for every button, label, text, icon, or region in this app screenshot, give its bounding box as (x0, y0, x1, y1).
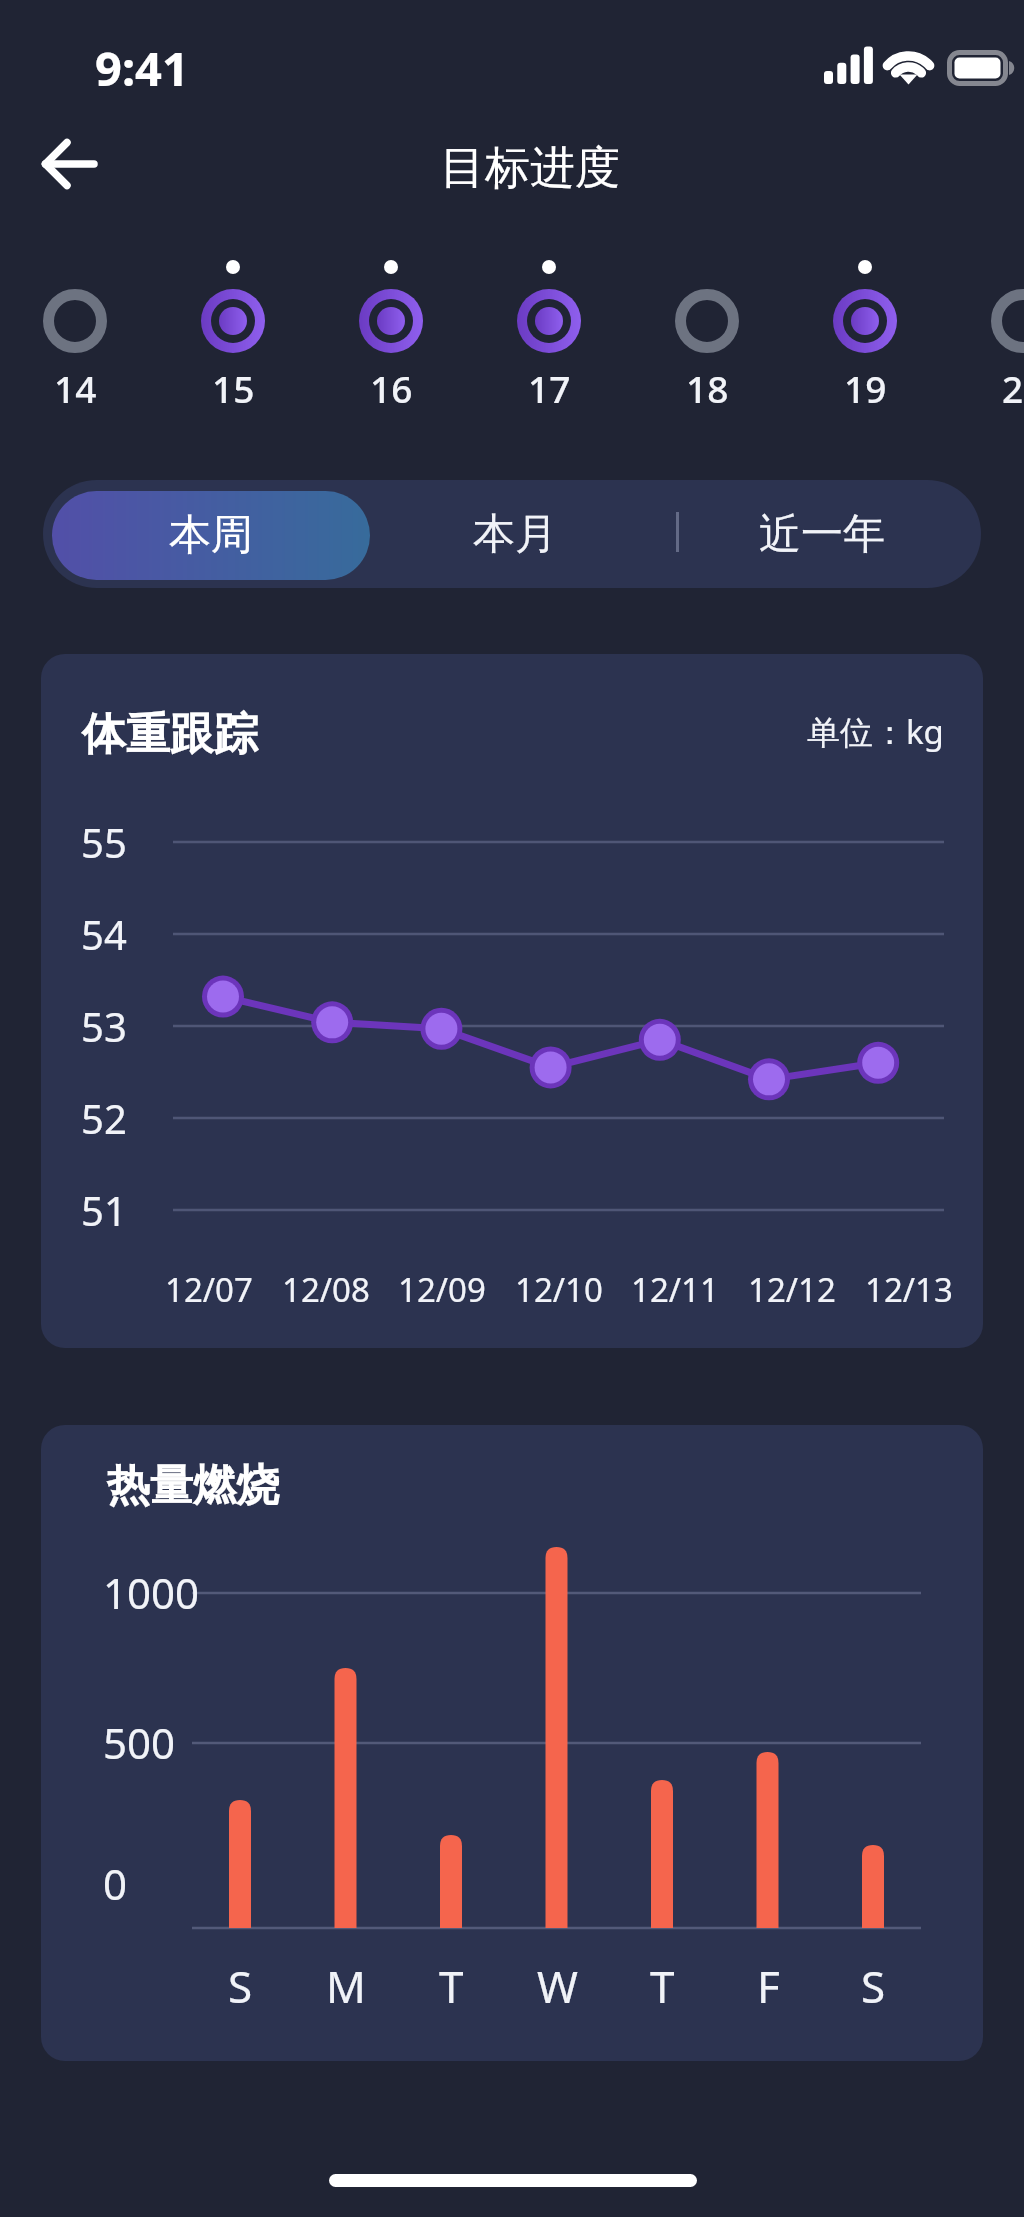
button[interactable]: 本月 (365, 480, 665, 588)
staticText: 54 (81, 907, 127, 961)
staticText: 17 (528, 363, 571, 413)
staticText: 53 (81, 999, 127, 1053)
staticText: 19 (844, 363, 887, 413)
staticText: 0 (103, 1855, 128, 1912)
button[interactable]: 18 (647, 248, 767, 413)
button[interactable]: 17 (489, 248, 609, 413)
staticText: 9:41 (95, 36, 189, 100)
button[interactable]: 本周 (52, 491, 370, 580)
staticText: 51 (81, 1183, 127, 1237)
button[interactable]: 20 (963, 248, 1024, 413)
staticText: 本月 (473, 508, 557, 561)
staticText: 1000 (103, 1564, 200, 1621)
staticText: 16 (370, 363, 413, 413)
staticText: 14 (54, 363, 97, 413)
staticText: 12/07 (165, 1267, 253, 1312)
staticText: 体重跟踪 (82, 707, 258, 762)
button[interactable]: 16 (331, 248, 451, 413)
button[interactable]: 近一年 (674, 480, 969, 588)
button[interactable]: 15 (173, 248, 293, 413)
staticText: F (757, 1956, 780, 2014)
staticText: M (326, 1956, 366, 2014)
staticText: 近一年 (759, 508, 885, 561)
staticText: 目标进度 (440, 140, 620, 197)
button[interactable]: Back (22, 118, 116, 210)
staticText: 12/09 (398, 1267, 486, 1312)
staticText: S (861, 1956, 886, 2014)
staticText: 52 (81, 1091, 127, 1145)
staticText: 18 (686, 363, 729, 413)
staticText: 单位：kg (807, 709, 944, 754)
staticText: W (537, 1956, 578, 2014)
staticText: 12/12 (748, 1267, 836, 1312)
staticText: T (650, 1956, 675, 2014)
staticText: 12/08 (282, 1267, 370, 1312)
staticText: 20 (1002, 363, 1024, 413)
staticText: 12/13 (865, 1267, 953, 1312)
staticText: 500 (103, 1714, 176, 1771)
staticText: 12/11 (631, 1267, 719, 1312)
staticText: T (439, 1956, 464, 2014)
staticText: S (228, 1956, 253, 2014)
staticText: 55 (81, 815, 127, 869)
staticText: 热量燃烧 (107, 1459, 279, 1513)
button[interactable]: 14 (15, 248, 135, 413)
staticText: 15 (212, 363, 255, 413)
staticText: 12/10 (515, 1267, 603, 1312)
button[interactable]: 19 (805, 248, 925, 413)
staticText: 本周 (169, 509, 253, 562)
